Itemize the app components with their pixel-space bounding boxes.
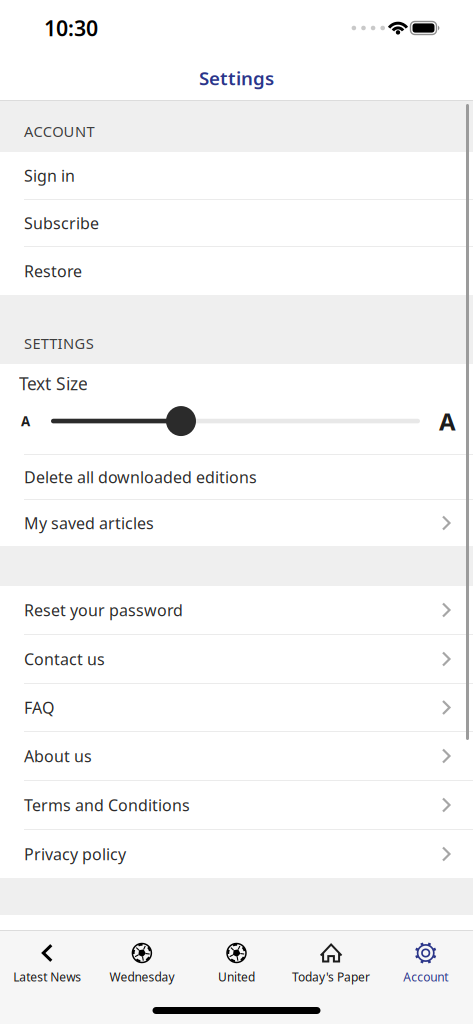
- button[interactable]: Wednesday: [95, 942, 189, 985]
- button[interactable]: Contact us: [0, 635, 473, 684]
- staticText: United: [218, 969, 255, 985]
- staticText: FAQ: [24, 697, 54, 718]
- staticText: Terms and Conditions: [24, 794, 190, 816]
- button[interactable]: FAQ: [0, 684, 473, 732]
- staticText: Account: [403, 969, 448, 985]
- button[interactable]: Terms and Conditions: [0, 781, 473, 830]
- button[interactable]: Text size slider: [30, 406, 439, 436]
- button[interactable]: Privacy policy: [0, 830, 473, 878]
- staticText: Latest News: [13, 969, 81, 985]
- staticText: Subscribe: [24, 212, 99, 234]
- staticText: Wednesday: [109, 969, 174, 985]
- button[interactable]: Reset your password: [0, 586, 473, 635]
- button[interactable]: Sign in: [0, 152, 473, 200]
- staticText: A: [439, 405, 456, 437]
- button[interactable]: Latest News: [0, 942, 95, 985]
- button[interactable]: Today's Paper: [284, 942, 378, 985]
- button[interactable]: My saved articles: [0, 500, 473, 546]
- staticText: Text Size: [19, 372, 88, 395]
- staticText: 10:30: [44, 14, 98, 42]
- button[interactable]: Subscribe: [0, 200, 473, 247]
- staticText: ACCOUNT: [24, 121, 94, 141]
- staticText: Privacy policy: [24, 843, 126, 865]
- staticText: About us: [24, 745, 92, 767]
- staticText: SETTINGS: [24, 333, 94, 353]
- button[interactable]: Restore: [0, 247, 473, 295]
- button[interactable]: Delete all downloaded editions: [0, 455, 473, 500]
- staticText: Delete all downloaded editions: [24, 466, 257, 488]
- staticText: A: [21, 412, 30, 430]
- staticText: My saved articles: [24, 512, 154, 534]
- staticText: Sign in: [24, 165, 75, 186]
- staticText: Today's Paper: [292, 969, 370, 985]
- button[interactable]: About us: [0, 732, 473, 781]
- staticText: Settings: [199, 66, 274, 90]
- button[interactable]: United: [189, 942, 284, 985]
- staticText: Contact us: [24, 648, 105, 670]
- staticText: Restore: [24, 260, 82, 282]
- staticText: Reset your password: [24, 599, 183, 621]
- button[interactable]: Account: [378, 942, 473, 985]
